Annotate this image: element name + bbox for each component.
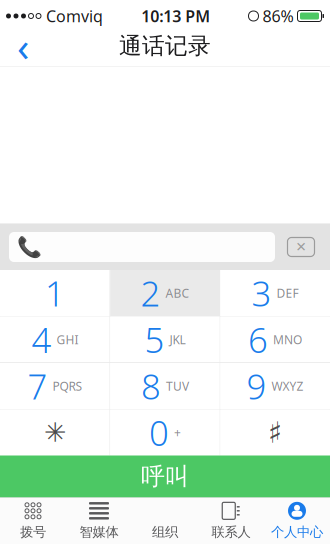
staticText: 8: [141, 363, 161, 409]
staticText: GHI: [56, 331, 78, 347]
button[interactable]: 呼叫: [0, 455, 330, 497]
button[interactable]: 5: [110, 316, 220, 362]
staticText: PQRS: [52, 378, 82, 394]
staticText: ABC: [165, 285, 189, 301]
button[interactable]: 3: [220, 270, 330, 316]
button[interactable]: Delete: [281, 231, 321, 263]
button[interactable]: 2: [110, 270, 220, 316]
staticText: 9: [247, 363, 267, 409]
staticText: 3: [252, 270, 272, 316]
button[interactable]: 9: [220, 363, 330, 409]
staticText: 0: [149, 409, 169, 455]
staticText: Comviq: [46, 5, 103, 27]
staticText: 6: [248, 316, 268, 362]
staticText: +: [174, 424, 181, 440]
button[interactable]: Back: [0, 26, 46, 66]
staticText: 1: [45, 270, 65, 316]
staticText: 2: [140, 270, 160, 316]
staticText: 联系人: [211, 524, 250, 540]
staticText: MNO: [273, 331, 302, 347]
staticText: TUV: [166, 378, 189, 394]
staticText: 10:13 PM: [141, 5, 210, 27]
button[interactable]: 7: [0, 363, 110, 409]
staticText: ‹: [17, 19, 29, 72]
staticText: 4: [31, 316, 51, 362]
button[interactable]: 个人中心: [264, 498, 330, 544]
button[interactable]: ✳: [0, 409, 110, 455]
staticText: DEF: [277, 285, 299, 301]
button[interactable]: 4: [0, 316, 110, 362]
staticText: ✕: [295, 239, 306, 254]
button[interactable]: 智媒体: [66, 498, 132, 544]
staticText: 组织: [152, 524, 178, 540]
staticText: WXYZ: [272, 378, 304, 394]
staticText: 通话记录: [119, 32, 211, 60]
staticText: JKL: [169, 331, 185, 347]
button[interactable]: ♯: [220, 409, 330, 455]
button[interactable]: 拨号: [0, 498, 66, 544]
button[interactable]: 1: [0, 270, 110, 316]
staticText: 拨号: [20, 524, 46, 540]
button[interactable]: 6: [220, 316, 330, 362]
staticText: 呼叫: [141, 462, 189, 491]
button[interactable]: 联系人: [198, 498, 264, 544]
staticText: ♯: [268, 416, 282, 449]
button[interactable]: 组织: [132, 498, 198, 544]
staticText: 📞: [17, 236, 42, 258]
button[interactable]: 0: [110, 409, 220, 455]
staticText: ✳: [44, 417, 66, 448]
staticText: 5: [144, 316, 164, 362]
staticText: 智媒体: [79, 524, 118, 540]
button[interactable]: 8: [110, 363, 220, 409]
staticText: 7: [27, 363, 47, 409]
staticText: 86%: [262, 5, 293, 27]
staticText: 个人中心: [271, 524, 323, 540]
